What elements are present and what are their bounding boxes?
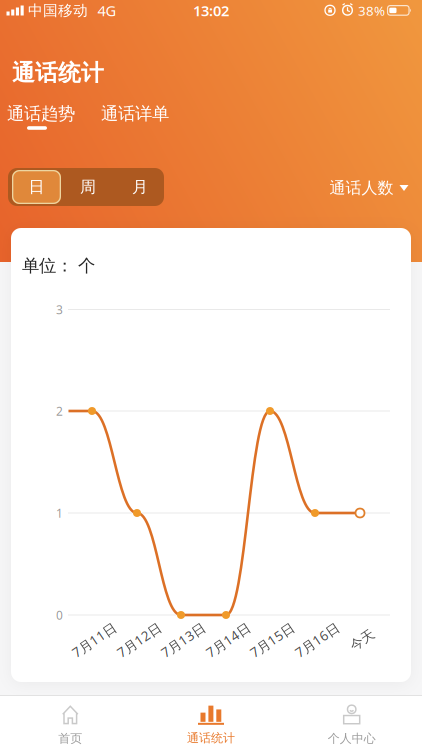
staticText: 13:02: [193, 1, 229, 20]
staticText: 7月12日: [114, 631, 164, 649]
staticText: 7月11日: [69, 631, 119, 649]
staticText: 38%: [358, 2, 385, 19]
staticText: 通话统计: [187, 731, 235, 745]
staticText: 7月16日: [292, 631, 342, 649]
button[interactable]: 通话趋势: [7, 103, 75, 124]
button[interactable]: 周: [62, 168, 114, 206]
staticText: 2: [56, 403, 63, 419]
button[interactable]: 月: [114, 168, 166, 206]
staticText: 日: [28, 177, 44, 197]
staticText: 0: [56, 607, 63, 623]
button[interactable]: 首页: [0, 700, 140, 750]
staticText: 通话趋势: [7, 103, 75, 124]
staticText: 首页: [58, 731, 82, 746]
staticText: 单位： 个: [22, 255, 95, 276]
button[interactable]: 个人中心: [282, 700, 422, 750]
staticText: 月: [132, 177, 148, 197]
staticText: 7月15日: [247, 631, 297, 649]
staticText: 个人中心: [328, 731, 376, 746]
staticText: 4G: [97, 1, 116, 20]
staticText: 通话详单: [101, 103, 169, 124]
button[interactable]: 通话人数: [329, 178, 408, 198]
staticText: 通话人数: [329, 178, 393, 198]
staticText: 7月14日: [203, 631, 253, 649]
staticText: 中国移动: [28, 1, 88, 19]
button[interactable]: 日: [12, 170, 61, 204]
button[interactable]: 通话统计: [141, 700, 281, 750]
staticText: 通话统计: [12, 59, 104, 87]
button[interactable]: 通话详单: [101, 103, 169, 124]
staticText: 3: [56, 301, 63, 317]
staticText: 今天: [349, 632, 375, 648]
staticText: 7月13日: [158, 631, 208, 649]
staticText: 1: [56, 505, 63, 521]
staticText: 周: [80, 177, 96, 197]
